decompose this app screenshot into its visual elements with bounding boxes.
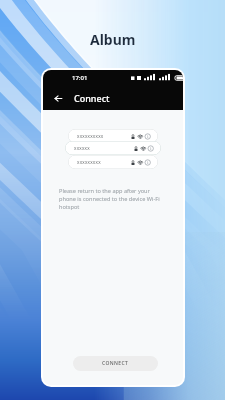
staticText: Connect [74,92,110,104]
button[interactable]: XXXXXXXXXX [68,129,158,143]
button[interactable]: XXXXXX [65,141,161,155]
staticText: Album [90,30,136,49]
button[interactable]: Back [50,90,66,106]
button[interactable]: XXXXXXXXX [68,155,158,169]
staticText: XXXXXXXXXX [77,134,104,139]
staticText: XXXXXX [74,146,90,151]
staticText: Please return to the app after your phon… [59,187,162,211]
button[interactable]: CONNECT [73,356,158,371]
staticText: CONNECT [102,360,129,367]
staticText: 17:01 [72,74,88,82]
staticText: XXXXXXXXX [77,160,101,165]
